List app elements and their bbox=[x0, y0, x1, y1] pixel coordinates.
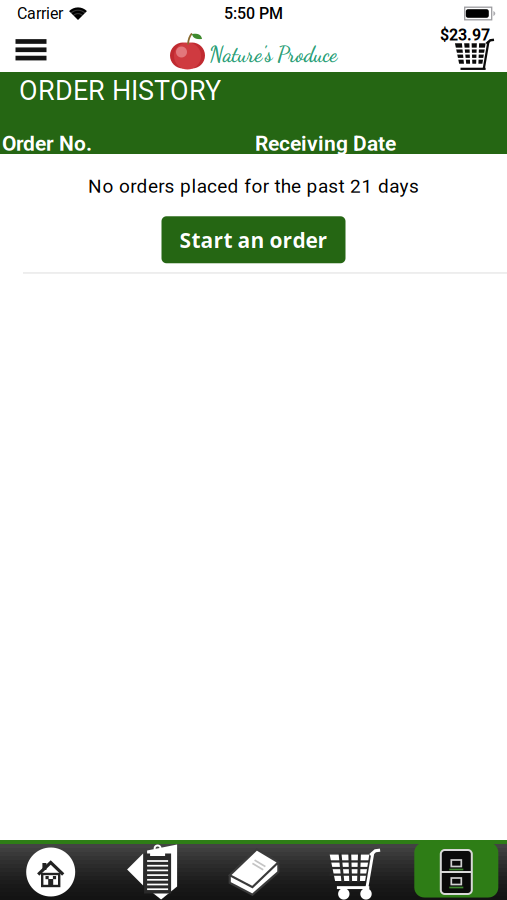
staticText: Carrier bbox=[17, 4, 63, 23]
staticText: No orders placed for the past 21 days bbox=[88, 175, 419, 197]
button[interactable]: Order History bbox=[406, 844, 507, 900]
staticText: ORDER HISTORY bbox=[19, 75, 221, 107]
button[interactable]: Cart bbox=[440, 24, 490, 75]
button[interactable]: Home bbox=[0, 844, 101, 900]
staticText: 5:50 PM bbox=[224, 4, 283, 23]
button[interactable]: Orders bbox=[101, 844, 203, 900]
button[interactable]: Catalog bbox=[203, 844, 304, 900]
staticText: Receiving Date bbox=[255, 131, 396, 156]
staticText: Nature's Produce bbox=[209, 42, 337, 67]
button[interactable]: Menu bbox=[9, 33, 53, 67]
staticText: Start an order bbox=[179, 225, 327, 254]
staticText: Order No. bbox=[2, 131, 92, 156]
staticText: $23.97 bbox=[440, 26, 490, 45]
button[interactable]: Start an order bbox=[161, 216, 345, 263]
button[interactable]: Cart bbox=[304, 844, 406, 900]
